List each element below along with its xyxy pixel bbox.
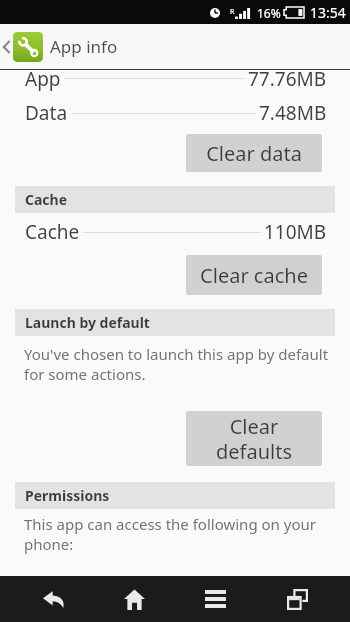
button[interactable]: Back: [13, 576, 94, 622]
button[interactable]: Menu: [175, 576, 256, 622]
staticText: R: [230, 7, 235, 17]
button[interactable]: Home: [94, 576, 175, 622]
staticText: App: [25, 70, 61, 92]
button[interactable]: Clear data: [186, 134, 322, 172]
staticText: Clear data: [206, 140, 302, 167]
button[interactable]: Data: [0, 97, 350, 129]
staticText: Permissions: [25, 486, 110, 505]
staticText: Cache: [25, 190, 68, 209]
staticText: You've chosen to launch this app by defa…: [24, 344, 342, 384]
staticText: App info: [50, 35, 118, 58]
staticText: Clear cache: [200, 262, 308, 289]
button[interactable]: Cache: [0, 216, 350, 248]
button[interactable]: Back: [0, 24, 350, 69]
staticText: Clear defaults: [216, 413, 292, 465]
staticText: This app can access the following on you…: [24, 514, 342, 554]
staticText: 13:54: [310, 3, 346, 22]
staticText: Data: [25, 100, 68, 126]
button[interactable]: Recent apps: [257, 576, 338, 622]
staticText: Launch by default: [25, 313, 150, 332]
staticText: 16%: [257, 5, 281, 21]
staticText: 77.76MB: [248, 70, 327, 92]
other: Back: [0, 34, 13, 60]
button[interactable]: Clear cache: [186, 255, 322, 295]
button[interactable]: Clear defaults: [186, 411, 322, 466]
staticText: Cache: [25, 219, 80, 245]
staticText: 7.48MB: [259, 100, 327, 126]
button[interactable]: App: [0, 70, 350, 92]
staticText: 110MB: [264, 219, 327, 245]
